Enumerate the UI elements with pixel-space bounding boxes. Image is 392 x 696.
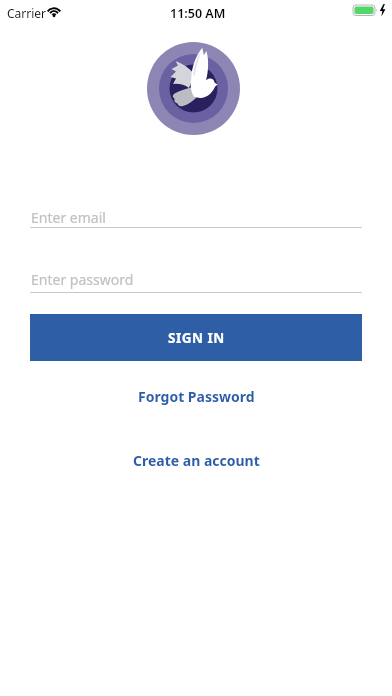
button[interactable]: Create an account: [133, 451, 260, 470]
staticText: Enter password: [31, 270, 134, 289]
button[interactable]: Enter password: [30, 268, 362, 293]
staticText: 11:50 AM: [170, 5, 226, 22]
staticText: Carrier: [7, 5, 47, 21]
staticText: Enter email: [31, 208, 106, 227]
button[interactable]: Enter email: [30, 203, 362, 228]
button[interactable]: SIGN IN: [30, 314, 362, 361]
staticText: SIGN IN: [168, 329, 225, 347]
button[interactable]: Forgot Password: [138, 387, 255, 406]
